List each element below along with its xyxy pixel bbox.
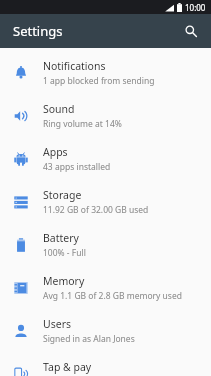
staticText: Memory: [43, 274, 85, 288]
staticText: 100% - Full: [43, 247, 86, 259]
staticText: 10:00: [185, 2, 206, 13]
button[interactable]: Storage: [0, 180, 211, 223]
button[interactable]: Battery: [0, 223, 211, 266]
button[interactable]: Memory: [0, 266, 211, 309]
staticText: Tap & pay: [43, 360, 92, 374]
button[interactable]: Users: [0, 309, 211, 352]
staticText: 43 apps installed: [43, 161, 111, 173]
button[interactable]: Notifications: [0, 51, 211, 94]
staticText: Signed in as Alan Jones: [43, 333, 135, 345]
button[interactable]: Apps: [0, 137, 211, 180]
staticText: Apps: [43, 145, 68, 159]
staticText: Battery: [43, 231, 79, 245]
staticText: Settings: [13, 22, 63, 40]
button[interactable]: Tap & pay: [0, 352, 211, 376]
staticText: Sound: [43, 102, 75, 116]
staticText: Avg 1.1 GB of 2.8 GB memory used: [43, 290, 182, 302]
staticText: 1 app blocked from sending: [43, 75, 155, 87]
button[interactable]: Sound: [0, 94, 211, 137]
button[interactable]: Search: [178, 18, 204, 44]
staticText: 11.92 GB of 32.00 GB used: [43, 204, 149, 216]
staticText: Users: [43, 317, 71, 331]
staticText: Ring volume at 14%: [43, 118, 122, 130]
staticText: Storage: [43, 188, 82, 202]
staticText: Notifications: [43, 59, 106, 73]
